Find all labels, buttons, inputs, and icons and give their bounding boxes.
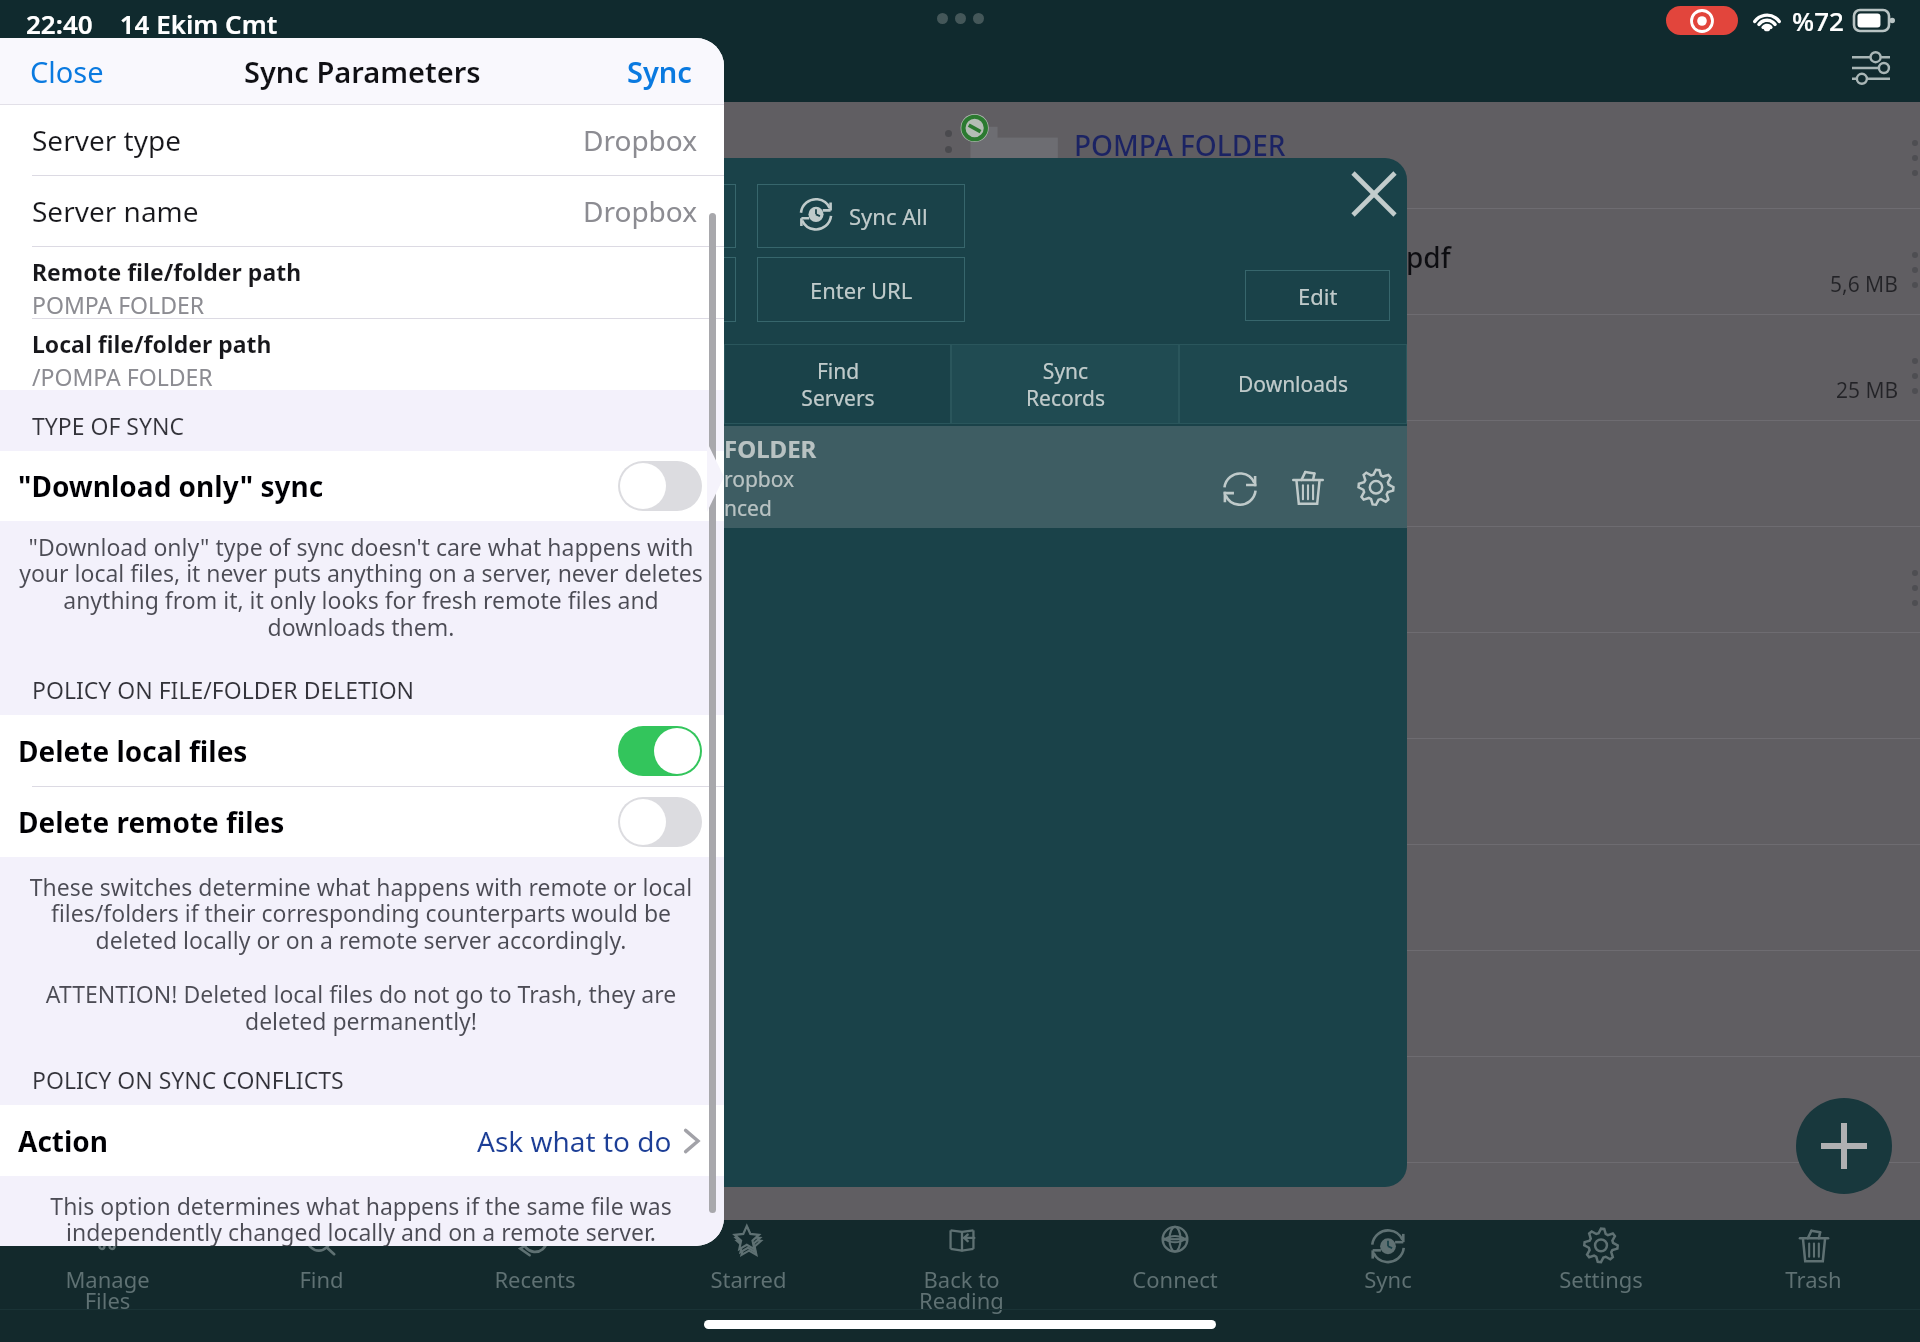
button[interactable]: Sync All (757, 184, 965, 248)
staticText: Edit (1298, 281, 1338, 311)
staticText: Connect (1132, 1264, 1218, 1294)
button[interactable]: Remote file/folder path (0, 247, 724, 318)
button[interactable]: Downloads (1179, 344, 1407, 424)
staticText: pdf (1406, 238, 1451, 276)
staticText: Dropbox (583, 121, 698, 159)
button[interactable]: Sync (1281, 1220, 1494, 1342)
staticText: These switches determine what happens wi… (9, 871, 713, 1037)
button[interactable]: Starred (642, 1220, 855, 1342)
staticText: Recents (494, 1264, 576, 1294)
staticText: /POMPA FOLDER (32, 361, 213, 390)
staticText: nced (724, 494, 772, 523)
button[interactable]: Display options (1852, 53, 1890, 83)
button[interactable]: Sync now (1217, 467, 1263, 513)
staticText: Back to Reading (919, 1264, 1004, 1316)
button[interactable]: Connect (1068, 1220, 1281, 1342)
button[interactable]: Settings (1353, 467, 1399, 513)
button[interactable]: Delete local files (0, 715, 724, 786)
staticText: "Download only" type of sync doesn't car… (9, 531, 713, 643)
staticText: Settings (1559, 1264, 1643, 1294)
staticText: Enter URL (810, 275, 913, 305)
staticText: Downloads (1238, 370, 1348, 399)
staticText: Sync Records (1026, 357, 1105, 412)
staticText: Find (299, 1264, 344, 1294)
button[interactable]: Server type (0, 105, 724, 175)
button[interactable]: Add (1796, 1098, 1892, 1194)
staticText: Manage Files (65, 1264, 150, 1316)
button[interactable]: Find Servers (724, 344, 951, 424)
staticText: 5,6 MB (1830, 270, 1898, 299)
button[interactable]: Delete remote files (0, 787, 724, 857)
button[interactable]: Close (1342, 162, 1406, 226)
staticText: POMPA FOLDER (1074, 126, 1286, 164)
staticText: Action (18, 1122, 109, 1160)
staticText: Server type (32, 121, 181, 159)
button[interactable]: Trash (1707, 1220, 1920, 1342)
button[interactable]: Find (214, 1220, 428, 1342)
staticText: %72 (1792, 3, 1844, 38)
staticText: POMPA FOLDER (32, 289, 205, 318)
staticText: Sync All (849, 201, 928, 231)
staticText: "Download only" sync (18, 467, 324, 505)
staticText: Remote file/folder path (32, 256, 302, 287)
staticText: FOLDER (724, 432, 817, 465)
staticText: 22:40 14 Ekim Cmt (26, 6, 278, 41)
staticText: Local file/folder path (32, 328, 272, 359)
staticText: Sync Parameters (244, 52, 481, 91)
staticText: Server name (32, 192, 199, 230)
staticText: Dropbox (583, 192, 698, 230)
button[interactable]: Sync (627, 52, 692, 91)
staticText: This option determines what happens if t… (9, 1190, 713, 1246)
staticText: Starred (710, 1264, 787, 1294)
staticText: TYPE OF SYNC (32, 410, 185, 441)
button[interactable]: "Download only" sync (0, 451, 724, 521)
staticText: Delete remote files (18, 803, 285, 841)
button[interactable]: Edit (1245, 270, 1390, 321)
staticText: 25 MB (1836, 376, 1899, 405)
button[interactable]: Action (0, 1105, 724, 1176)
staticText: Delete local files (18, 732, 248, 770)
button[interactable]: Sync Records (951, 344, 1179, 424)
button[interactable]: Close (30, 52, 104, 91)
button[interactable]: Server name (0, 176, 724, 246)
button[interactable]: Delete (1285, 467, 1331, 513)
staticText: Ask what to do (477, 1122, 672, 1160)
button[interactable]: Manage Files (0, 1220, 214, 1342)
staticText: POLICY ON SYNC CONFLICTS (32, 1064, 344, 1095)
button[interactable]: Recents (428, 1220, 642, 1342)
button[interactable]: Back to Reading (855, 1220, 1068, 1342)
button[interactable]: Enter URL (757, 257, 965, 322)
staticText: Sync (1364, 1264, 1412, 1294)
staticText: POLICY ON FILE/FOLDER DELETION (32, 674, 415, 705)
button[interactable]: Local file/folder path (0, 319, 724, 390)
button[interactable]: Settings (1494, 1220, 1707, 1342)
staticText: Find Servers (801, 357, 875, 412)
staticText: ropbox (724, 465, 795, 494)
staticText: Trash (1785, 1264, 1842, 1294)
